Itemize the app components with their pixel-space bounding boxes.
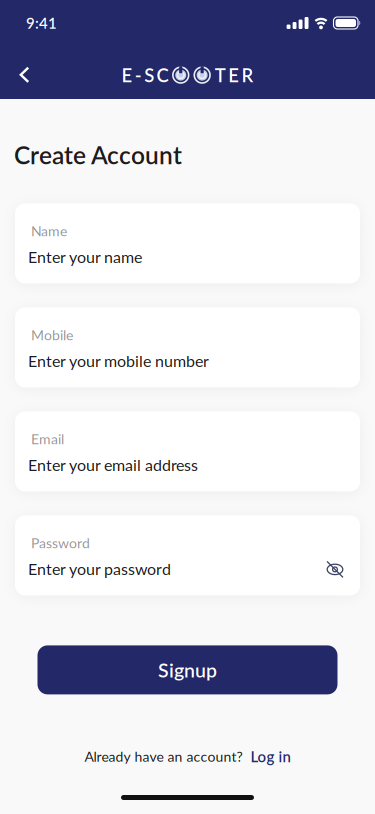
- button[interactable]: Name: [15, 203, 360, 283]
- staticText: Password: [31, 534, 90, 551]
- staticText: E: [228, 64, 239, 86]
- staticText: E: [121, 64, 132, 86]
- button[interactable]: Email: [15, 411, 360, 491]
- button[interactable]: Password: [15, 515, 360, 595]
- button[interactable]: Log in: [250, 747, 290, 765]
- staticText: S: [144, 64, 154, 86]
- staticText: Already have an account?: [84, 748, 242, 765]
- staticText: Create Account: [14, 140, 182, 169]
- button[interactable]: Show password: [325, 559, 345, 579]
- staticText: Log in: [250, 747, 290, 765]
- staticText: R: [242, 64, 254, 86]
- staticText: Enter your email address: [28, 455, 198, 474]
- staticText: Email: [31, 430, 64, 447]
- button[interactable]: Back: [0, 0, 30, 83]
- button[interactable]: Signup: [37, 645, 337, 694]
- staticText: Signup: [158, 658, 217, 682]
- staticText: C: [157, 64, 169, 86]
- staticText: -: [135, 64, 142, 86]
- staticText: Enter your password: [28, 559, 171, 578]
- staticText: 9:41: [26, 14, 57, 32]
- button[interactable]: Mobile: [15, 307, 360, 387]
- staticText: Mobile: [31, 326, 73, 343]
- staticText: T: [215, 64, 226, 86]
- staticText: Enter your name: [28, 247, 142, 266]
- staticText: Enter your mobile number: [28, 351, 209, 370]
- staticText: Name: [31, 222, 67, 239]
